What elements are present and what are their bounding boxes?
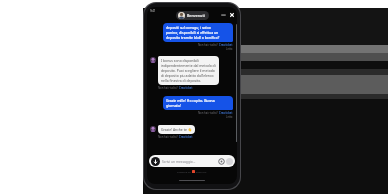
button[interactable]: Attach file [151,157,160,166]
staticText: Grazie mille! Ho capito. Buona [166,98,215,103]
staticText: Grazie! Anche te 👋 [161,127,192,132]
button[interactable]: Send [226,158,233,165]
staticText: indipendentemente dal metodo di [161,63,216,68]
staticText: Powered by [177,170,192,173]
staticText: Non hai risolto? [198,111,219,115]
staticText: Non hai risolto? [158,135,179,139]
button[interactable]: Benvenuti [176,11,209,20]
button[interactable]: Crea ticket [219,43,233,47]
button[interactable]: Crea ticket [179,86,193,90]
staticText: deposito tramite bkdl o bonifico? [166,35,220,40]
staticText: Intercom [195,170,207,173]
button[interactable]: Minimize [220,11,227,18]
staticText: panino, disponibili si effettua un [166,30,219,35]
button[interactable]: depositi sul comsgu, i sotxo [163,23,233,42]
button[interactable]: Grazie! Anche te 👋 [158,125,195,134]
staticText: di deposito piu adatto dall'elenco [161,73,214,78]
staticText: Non hai risolto? [198,43,219,47]
staticText: Benvenuti [187,13,205,18]
staticText: deposito. Puoi scegliere il metodo [161,68,215,73]
staticText: I bonus sono disponibili [161,58,199,63]
button[interactable]: Emoji [218,158,225,165]
button[interactable]: Crea ticket [219,111,233,115]
button[interactable]: Close [228,11,236,19]
button[interactable]: Grazie mille! Ho capito. Buona [163,96,233,110]
staticText: Letto [226,115,233,119]
button[interactable]: I bonus sono disponibili [158,56,219,85]
staticText: 9:41 [150,9,156,13]
staticText: nella finestra di deposito. [161,78,202,83]
staticText: depositi sul comsgu, i sotxo [166,25,211,30]
staticText: giornata! [166,103,181,108]
staticText: Scrivi un messaggio... [162,159,218,163]
staticText: Letto [226,47,233,51]
button[interactable]: Crea ticket [179,135,193,139]
button[interactable]: Attach file [149,155,235,167]
staticText: Non hai risolto? [158,86,179,90]
